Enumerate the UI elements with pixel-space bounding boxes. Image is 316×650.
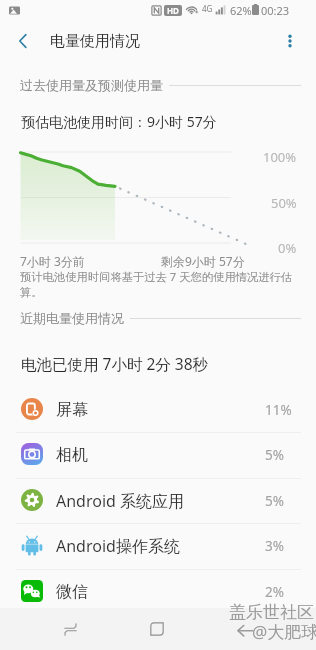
staticText: 100% xyxy=(263,148,297,166)
button[interactable]: 屏幕 xyxy=(0,387,316,433)
staticText: 过去使用量及预测使用量 xyxy=(20,77,163,93)
staticText: 62% xyxy=(230,3,252,18)
button[interactable]: Home xyxy=(136,608,178,650)
staticText: 3% xyxy=(265,537,284,555)
button[interactable]: Android 系统应用 xyxy=(0,478,316,524)
staticText: 预估电池使用时间：9小时 57分 xyxy=(21,112,217,131)
staticText: 盖乐世社区 xyxy=(229,602,314,623)
staticText: 7小时 3分前 xyxy=(20,253,85,269)
button[interactable]: Android操作系统 xyxy=(0,523,316,569)
button[interactable]: Recent apps xyxy=(49,608,91,650)
staticText: 剩余9小时 57分 xyxy=(161,253,245,269)
staticText: Android操作系统 xyxy=(56,535,180,557)
staticText: Android 系统应用 xyxy=(56,490,185,512)
staticText: 0% xyxy=(278,239,297,257)
staticText: 5% xyxy=(265,492,284,510)
staticText: 相机 xyxy=(56,445,88,465)
button[interactable]: 微信 xyxy=(0,569,316,615)
staticText: 电量使用情况 xyxy=(50,32,140,51)
staticText: 屏幕 xyxy=(56,400,88,420)
button[interactable]: Back xyxy=(5,23,41,59)
button[interactable]: Back xyxy=(223,608,265,650)
staticText: 预计电池使用时间将基于过去 7 天您的使用情况进行估算。 xyxy=(20,269,300,300)
staticText: 2% xyxy=(265,583,284,601)
staticText: HD xyxy=(167,5,179,16)
staticText: 50% xyxy=(271,194,297,212)
staticText: 11% xyxy=(265,401,292,419)
staticText: 近期电量使用情况 xyxy=(20,310,124,326)
button[interactable]: 相机 xyxy=(0,432,316,478)
staticText: 电池已使用 7小时 2分 38秒 xyxy=(21,353,209,374)
staticText: @大肥球 xyxy=(252,620,316,643)
staticText: 微信 xyxy=(56,582,88,602)
staticText: 00:23 xyxy=(261,3,290,18)
button[interactable]: More options xyxy=(272,23,308,59)
staticText: 5% xyxy=(265,446,284,464)
staticText: 4G xyxy=(202,3,213,14)
